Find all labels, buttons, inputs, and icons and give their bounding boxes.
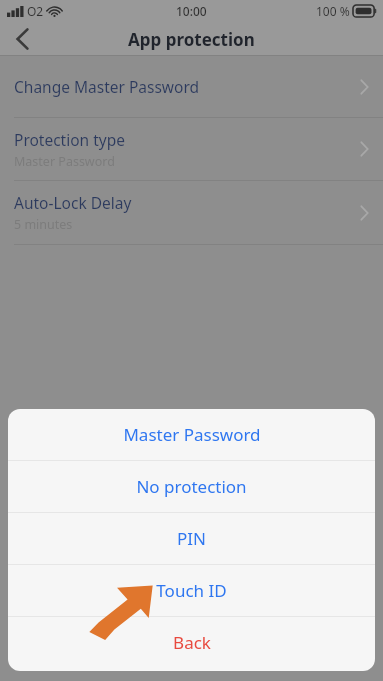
staticText: Touch ID [156, 579, 227, 602]
button[interactable]: Protection type [0, 118, 383, 180]
staticText: Protection type [14, 129, 125, 150]
staticText: Master Password [123, 423, 261, 446]
button[interactable]: Auto-Lock Delay [0, 181, 383, 244]
button[interactable]: Touch ID [8, 565, 375, 616]
button[interactable]: No protection [8, 461, 375, 512]
button[interactable]: PIN [8, 513, 375, 564]
staticText: App protection [128, 28, 255, 51]
button[interactable]: Back [0, 22, 44, 56]
button[interactable]: Master Password [8, 409, 375, 460]
staticText: 10:00 [176, 3, 207, 19]
staticText: Master Password [14, 153, 115, 170]
staticText: No protection [136, 475, 247, 498]
staticText: 100 % [316, 3, 350, 19]
staticText: Back [173, 631, 211, 654]
staticText: 5 minutes [14, 216, 73, 233]
staticText: O2 [27, 3, 44, 19]
button[interactable]: Back [8, 617, 375, 668]
staticText: Change Master Password [14, 76, 200, 97]
staticText: PIN [177, 527, 206, 550]
button[interactable]: Change Master Password [0, 56, 383, 117]
staticText: Auto-Lock Delay [14, 192, 132, 213]
